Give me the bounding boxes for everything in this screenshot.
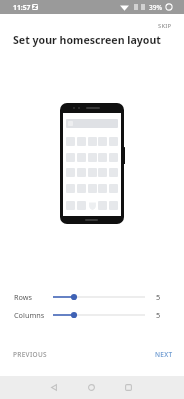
button[interactable]: Back <box>44 377 64 397</box>
button[interactable]: Recent apps <box>118 377 138 397</box>
button[interactable] <box>50 289 148 305</box>
button[interactable]: SKIP <box>152 18 178 34</box>
staticText: SKIP <box>158 22 172 30</box>
staticText: 39% <box>149 3 162 12</box>
button[interactable] <box>50 307 148 323</box>
staticText: 5 <box>156 310 161 320</box>
button[interactable]: NEXT <box>149 345 179 364</box>
staticText: NEXT <box>155 350 173 359</box>
staticText: 11:57 <box>13 3 31 12</box>
staticText: PREVIOUS <box>13 350 47 359</box>
staticText: Columns <box>14 310 45 320</box>
staticText: Set your homescreen layout <box>13 33 161 47</box>
button[interactable]: PREVIOUS <box>7 345 53 364</box>
staticText: 5 <box>156 292 161 302</box>
staticText: Rows <box>14 292 33 302</box>
button[interactable]: Home <box>81 377 101 397</box>
